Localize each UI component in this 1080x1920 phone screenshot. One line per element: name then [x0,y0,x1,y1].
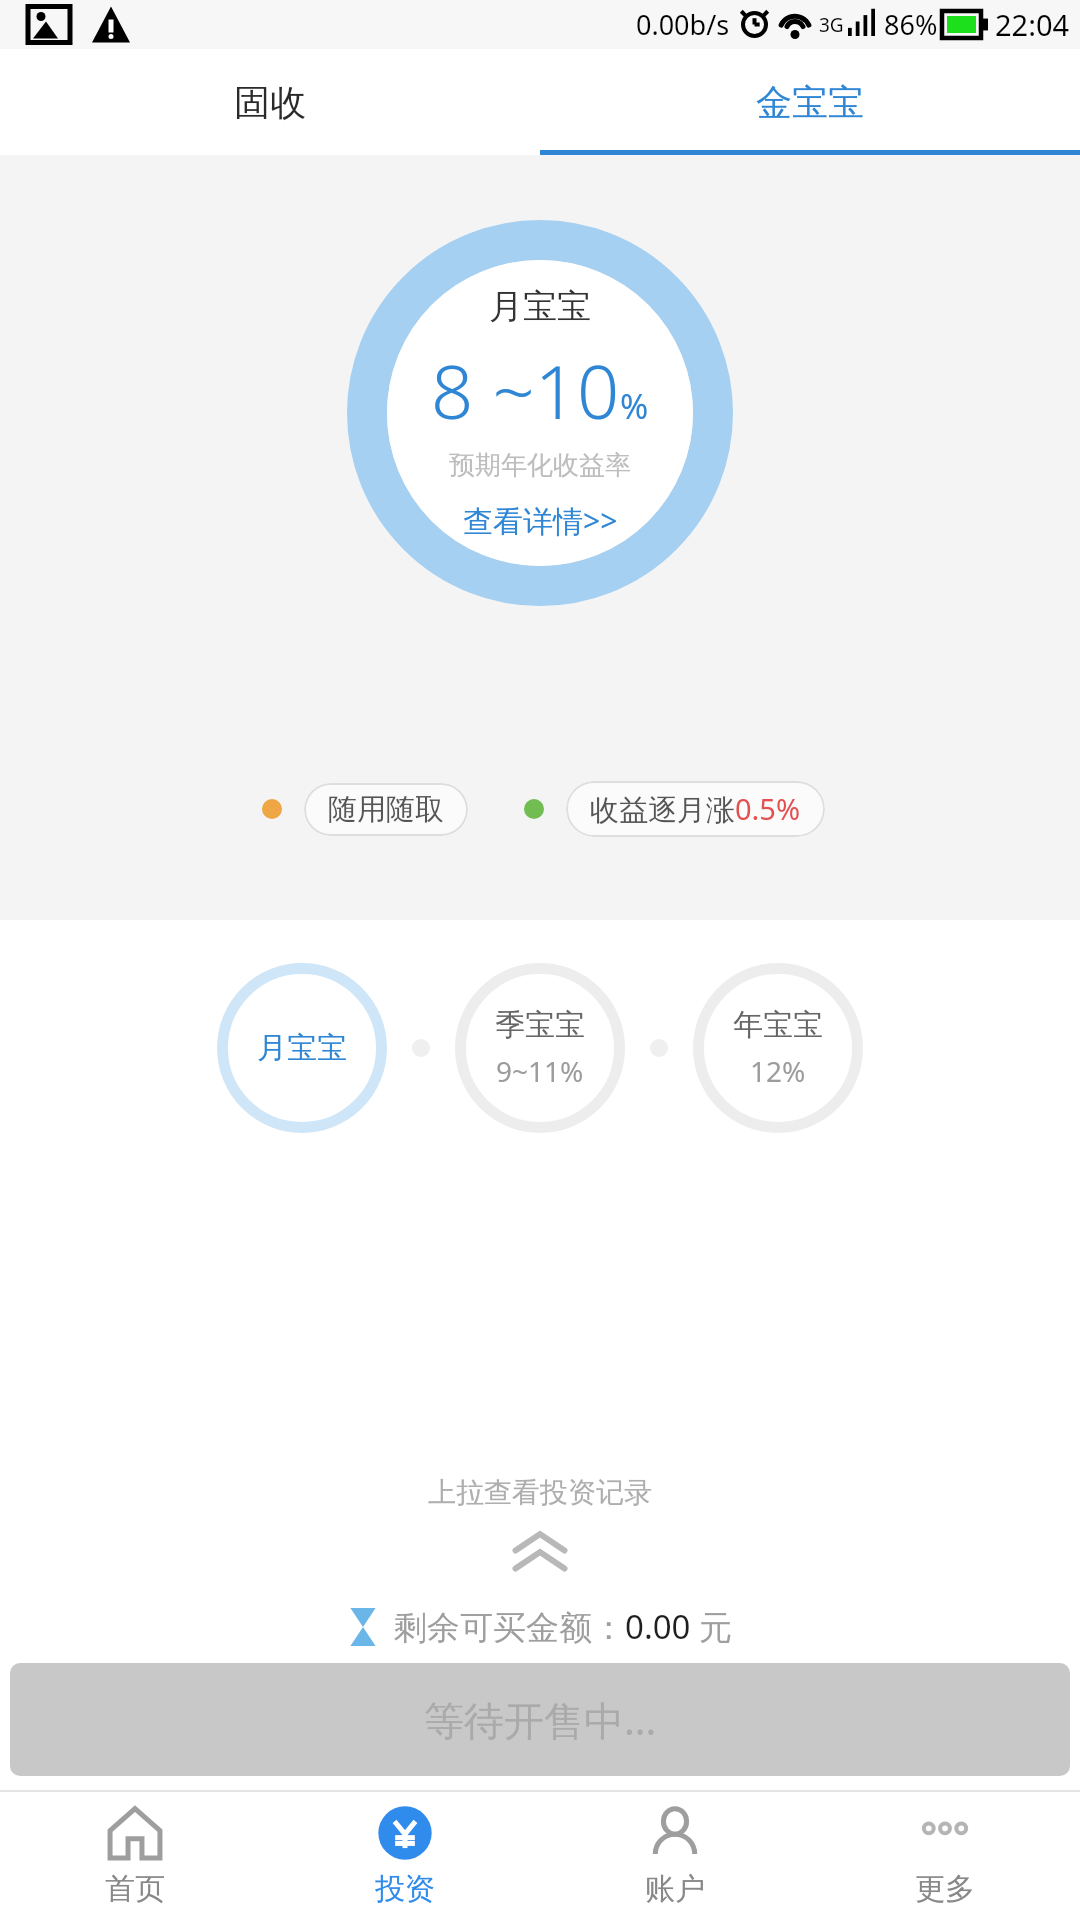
staticText: 9~11% [496,1052,584,1090]
button[interactable]: 账户 [540,1792,810,1920]
button[interactable]: 月宝宝 [347,220,733,606]
button[interactable]: 月宝宝 [214,960,390,1136]
staticText: 月宝宝 [257,1029,347,1067]
button[interactable]: 季宝宝 [452,960,628,1136]
staticText: 12% [750,1052,806,1090]
button[interactable]: 更多 [810,1792,1080,1920]
staticText: 首页 [105,1870,165,1908]
staticText: 收益逐月涨0.5% [590,789,801,829]
staticText: 86% [884,6,938,43]
staticText: 0.00b/s [636,6,730,43]
staticText: 等待开售中... [424,1692,657,1747]
staticText: 剩余可买金额：0.00 元 [394,1604,733,1649]
staticText: 账户 [645,1870,705,1908]
button[interactable]: 固收 [0,49,540,155]
staticText: % [620,383,649,429]
staticText: 投资 [375,1870,435,1908]
staticText: 3G [819,12,844,38]
staticText: 随用随取 [328,791,444,828]
staticText: 预期年化收益率 [449,449,631,482]
staticText: 8 ~10 [431,340,620,441]
staticText: 上拉查看投资记录 [428,1475,652,1510]
staticText: 更多 [915,1870,975,1908]
button[interactable]: 首页 [0,1792,270,1920]
button[interactable]: 查看详情>> [463,500,618,541]
button[interactable]: 金宝宝 [540,49,1080,155]
staticText: 季宝宝 [495,1006,585,1044]
staticText: 年宝宝 [733,1006,823,1044]
button[interactable]: 年宝宝 [690,960,866,1136]
staticText: 金宝宝 [756,80,864,125]
button[interactable]: 等待开售中... [10,1663,1070,1776]
button[interactable]: 随用随取 [304,783,468,836]
button[interactable]: 上拉查看投资记录 [0,1475,1080,1578]
other: Pull up to view investment records [505,1528,575,1578]
staticText: 固收 [234,80,306,125]
button[interactable]: 投资 [270,1792,540,1920]
button[interactable]: 收益逐月涨0.5% [566,781,825,837]
staticText: 月宝宝 [489,285,591,328]
staticText: 22:04 [995,5,1070,44]
